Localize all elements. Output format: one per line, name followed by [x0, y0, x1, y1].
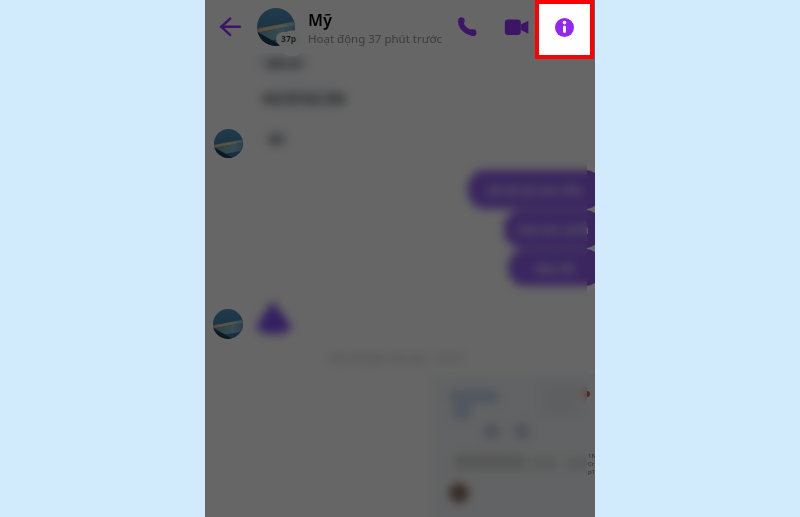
- staticText: mai di hoc nhe: [262, 90, 346, 106]
- staticText: 1N: [588, 452, 595, 460]
- staticText: oke chi: [535, 260, 575, 276]
- staticText: 37p: [281, 33, 297, 45]
- button[interactable]: Call: [450, 9, 484, 43]
- staticText: Hoạt động 37 phút trước: [308, 31, 443, 47]
- staticText: Cr: [588, 460, 595, 468]
- staticText: da: [269, 131, 284, 144]
- staticText: mai di hoc nhe: [262, 90, 346, 106]
- staticText: chi di voi em nhe: [487, 182, 583, 198]
- staticText: em oi: [268, 55, 300, 70]
- button[interactable]: Conversation information: [539, 4, 590, 55]
- button[interactable]: Back: [213, 9, 247, 43]
- staticText: Mỹ: [308, 9, 333, 31]
- staticText: p1: [588, 468, 595, 476]
- staticText: mai em ranh: [517, 221, 587, 237]
- staticText: da: [269, 131, 284, 144]
- button[interactable]: Video call: [499, 9, 533, 43]
- staticText: oke chi: [535, 260, 575, 276]
- staticText: em oi: [268, 55, 300, 70]
- staticText: mai em ranh: [517, 221, 589, 237]
- button[interactable]: Conversation information: [547, 9, 581, 43]
- button[interactable]: [250, 0, 445, 53]
- staticText: chi di voi em nhe: [487, 182, 583, 198]
